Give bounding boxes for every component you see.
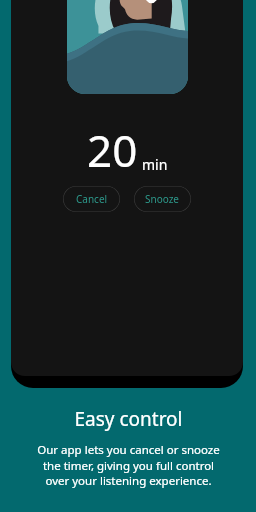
button[interactable]: Snooze <box>134 186 191 212</box>
staticText: Cancel <box>76 192 108 206</box>
staticText: 20 <box>87 120 138 180</box>
staticText: Our app lets you cancel or snooze the ti… <box>37 442 220 488</box>
staticText: Easy control <box>74 406 183 432</box>
button[interactable]: Cancel <box>63 186 120 212</box>
staticText: Snooze <box>145 192 180 206</box>
staticText: min <box>142 155 168 174</box>
